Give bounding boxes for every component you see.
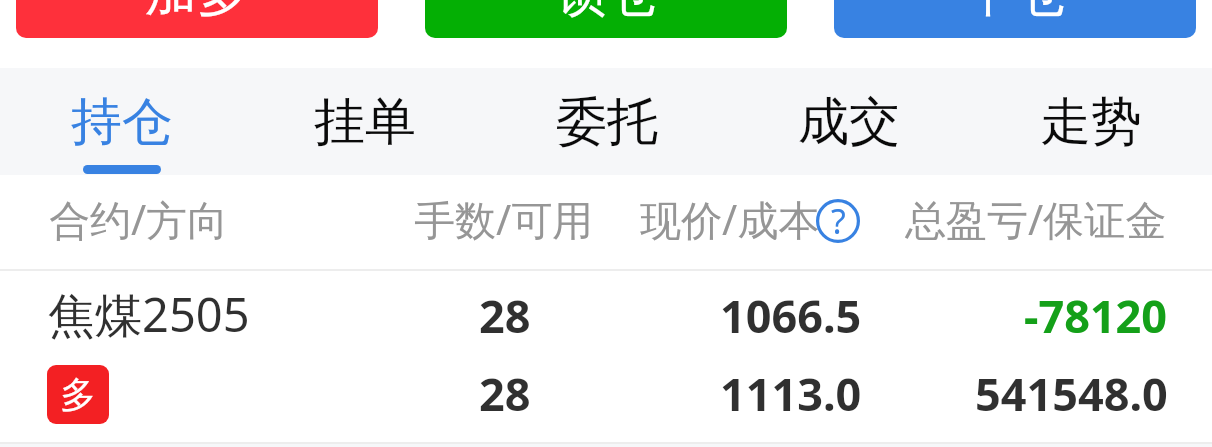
staticText: 挂单 xyxy=(314,90,416,154)
staticText: 1066.5 xyxy=(720,285,862,346)
button[interactable]: 成交 xyxy=(728,68,970,175)
button[interactable]: 持仓 xyxy=(0,68,243,175)
staticText: 541548.0 xyxy=(975,363,1168,424)
button[interactable]: 挂单 xyxy=(243,68,486,175)
staticText: 平仓 xyxy=(963,0,1067,26)
button[interactable]: 加多 xyxy=(16,0,378,38)
staticText: 现价/成本 xyxy=(640,191,820,247)
button[interactable]: 委托 xyxy=(486,68,728,175)
staticText: 总盈亏/保证金 xyxy=(905,191,1167,247)
staticText: -78120 xyxy=(1024,285,1168,346)
button[interactable]: 走势 xyxy=(970,68,1212,175)
button[interactable]: 焦煤2505 xyxy=(0,271,1212,442)
staticText: 加多 xyxy=(145,0,249,26)
button[interactable]: 现价成本说明 xyxy=(816,199,860,243)
staticText: 1113.0 xyxy=(720,363,862,424)
staticText: 成交 xyxy=(798,90,900,154)
staticText: 28 xyxy=(479,285,531,346)
staticText: 手数/可用 xyxy=(414,191,594,247)
staticText: 多 xyxy=(60,372,96,417)
staticText: 锁仓 xyxy=(554,0,658,26)
staticText: 委托 xyxy=(556,90,658,154)
button[interactable]: 平仓 xyxy=(834,0,1196,38)
staticText: 28 xyxy=(479,363,531,424)
staticText: 走势 xyxy=(1040,90,1142,154)
staticText: ? xyxy=(831,198,846,242)
staticText: 持仓 xyxy=(71,90,173,154)
staticText: 合约/方向 xyxy=(49,191,229,247)
staticText: 焦煤2505 xyxy=(48,282,250,346)
button[interactable]: 锁仓 xyxy=(425,0,787,38)
